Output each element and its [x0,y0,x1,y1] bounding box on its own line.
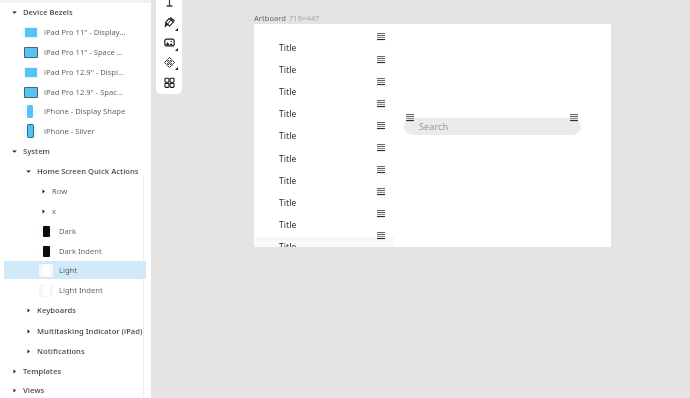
button[interactable]: iPad Pro 11" - Space ... [4,43,146,61]
button[interactable]: iPhone - Silver [4,122,146,140]
staticText: Title [279,197,297,208]
staticText: Templates [23,366,62,376]
button[interactable]: x [4,202,146,220]
staticText: Multitasking Indicator (iPad) [37,326,143,336]
button[interactable]: Title [254,215,611,233]
button[interactable]: Pen tool [156,13,182,31]
staticText: iPad Pro 12.9" - Spac... [44,87,124,97]
staticText: iPad Pro 11" - Display... [44,27,126,37]
button[interactable]: Title [254,126,611,144]
staticText: Title [279,153,297,164]
staticText: Home Screen Quick Actions [37,166,139,176]
button[interactable]: Title [254,38,611,56]
staticText: iPhone - Display Shape [44,106,126,116]
button[interactable]: Row [4,182,146,200]
button[interactable]: Device Bezels [4,3,146,21]
staticText: Light Indent [59,285,103,295]
button[interactable]: Title [254,193,611,211]
staticText: Artboard [254,13,286,23]
button[interactable]: Templates [4,362,146,380]
button[interactable]: Grid tool [156,73,182,91]
button[interactable]: Notifications [4,342,146,360]
button[interactable]: Keyboards [4,301,146,319]
button[interactable]: Symbol tool [156,53,182,71]
staticText: Title [279,86,297,97]
staticText: Views [23,385,45,395]
button[interactable]: Title [254,104,611,122]
staticText: Device Bezels [23,7,73,17]
staticText: Row [52,186,68,196]
staticText: Notifications [37,346,85,356]
button[interactable]: Dark [4,222,146,240]
staticText: iPhone - Silver [44,126,95,136]
button[interactable]: Title [254,237,611,247]
button[interactable]: Title [254,149,611,167]
button[interactable]: iPad Pro 12.9" - Spac... [4,83,146,101]
staticText: Title [279,241,297,247]
button[interactable]: iPad Pro 11" - Display... [4,23,146,41]
staticText: Keyboards [37,305,76,315]
staticText: Search [419,120,449,133]
button[interactable]: Home Screen Quick Actions [4,162,146,180]
staticText: iPad Pro 12.9" - Displ... [44,67,125,77]
button[interactable]: Light [4,261,146,279]
button[interactable]: Views [4,381,146,398]
button[interactable]: Text tool [156,0,182,10]
button[interactable]: Title [254,82,611,100]
button[interactable]: Title [254,60,611,78]
staticText: Title [279,64,297,75]
staticText: System [23,146,50,156]
button[interactable]: Multitasking Indicator (iPad) [4,322,146,340]
staticText: 718×447 [289,13,320,23]
staticText: Light [59,265,78,275]
button[interactable]: Image tool [156,33,182,51]
staticText: Title [279,219,297,230]
staticText: Dark [59,226,76,236]
button[interactable]: System [4,142,146,160]
staticText: Title [279,175,297,186]
button[interactable]: iPad Pro 12.9" - Displ... [4,63,146,81]
staticText: Title [279,42,297,53]
staticText: Title [279,130,297,141]
staticText: x [52,206,57,216]
staticText: Title [279,108,297,119]
button[interactable]: Dark Indent [4,242,146,260]
button[interactable]: Search [404,118,581,135]
staticText: iPad Pro 11" - Space ... [44,47,123,57]
staticText: Dark Indent [59,246,102,256]
button[interactable]: Light Indent [4,281,146,299]
button[interactable]: Title [254,171,611,189]
button[interactable]: iPhone - Display Shape [4,102,146,120]
